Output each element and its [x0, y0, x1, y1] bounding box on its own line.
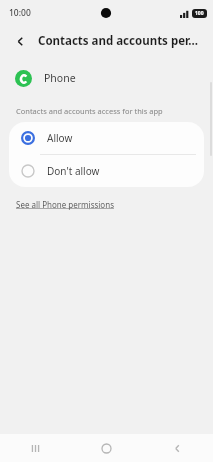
staticText: 100: [195, 10, 204, 17]
button[interactable]: Allow: [9, 122, 204, 154]
button[interactable]: Don't allow: [9, 155, 204, 187]
staticText: Phone: [44, 71, 76, 85]
staticText: See all Phone permissions: [16, 199, 114, 210]
button[interactable]: Recents: [0, 434, 71, 462]
button[interactable]: See all Phone permissions: [16, 199, 114, 210]
staticText: Allow: [47, 131, 73, 145]
staticText: Don't allow: [47, 164, 100, 178]
button[interactable]: Phone: [0, 62, 213, 94]
button[interactable]: Back: [8, 29, 32, 53]
button[interactable]: Home: [71, 434, 142, 462]
staticText: Contacts and accounts access for this ap…: [16, 106, 163, 116]
staticText: Contacts and accounts per...: [38, 33, 199, 49]
button[interactable]: Back: [142, 434, 213, 462]
staticText: 10:00: [9, 7, 31, 19]
